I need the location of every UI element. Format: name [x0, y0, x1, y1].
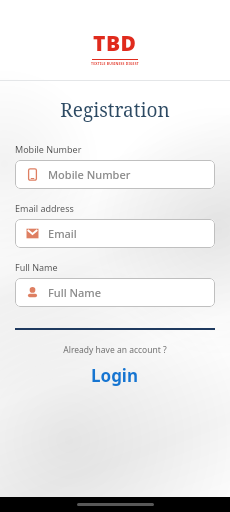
staticText: Registration: [0, 97, 230, 123]
button[interactable]: Full Name field: [15, 278, 215, 307]
staticText: Login: [91, 364, 139, 387]
staticText: Mobile Number: [48, 167, 131, 182]
staticText: Email address: [15, 202, 74, 214]
staticText: Already have an account ?: [15, 344, 215, 356]
staticText: Email: [48, 226, 77, 241]
staticText: Mobile Number: [15, 143, 82, 155]
staticText: TBD: [93, 29, 137, 58]
staticText: Full Name: [15, 261, 58, 273]
staticText: Full Name: [48, 285, 102, 300]
button[interactable]: Mobile Number field: [15, 160, 215, 189]
button[interactable]: Email address field: [15, 219, 215, 248]
staticText: TEXTILE BUSINESS DIGEST: [91, 61, 139, 66]
button[interactable]: Login: [15, 364, 215, 387]
